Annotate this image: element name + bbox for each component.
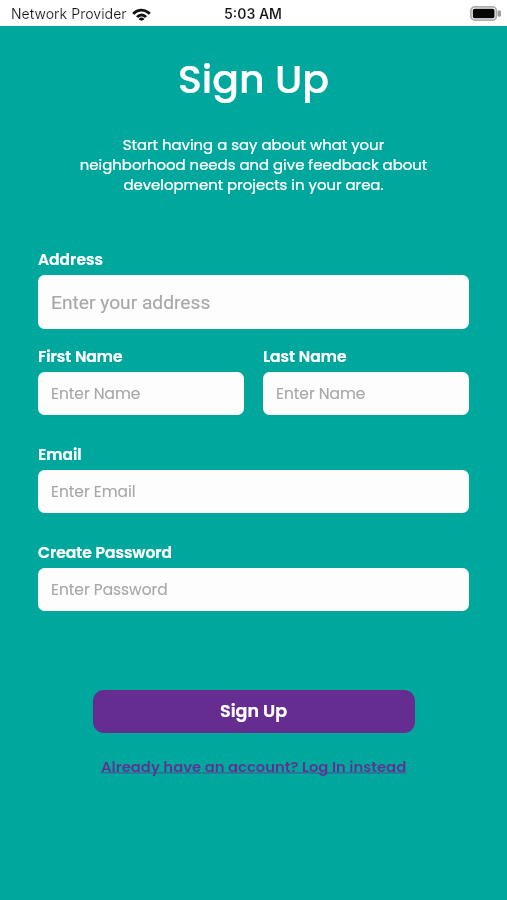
button[interactable]: Already have an account? Log In instead [101,756,407,777]
staticText: Create Password [38,542,173,564]
button[interactable]: Enter Email [38,470,469,513]
staticText: Address [38,249,103,271]
staticText: Sign Up [220,699,288,724]
staticText: Enter Password [51,579,168,601]
staticText: Enter Name [51,383,141,405]
staticText: First Name [38,346,123,368]
staticText: Email [38,444,82,466]
staticText: Sign Up [178,52,330,107]
staticText: Last Name [263,346,347,368]
staticText: Network Provider [11,5,127,22]
button[interactable]: Enter Password [38,568,469,611]
button[interactable]: Sign Up [93,690,415,733]
button[interactable]: Enter your address [38,275,469,329]
button[interactable]: Enter Name [38,372,244,415]
staticText: 5:03 AM [224,5,283,22]
button[interactable]: Enter Name [263,372,469,415]
staticText: Enter Name [276,383,366,405]
staticText: Start having a say about what your neigh… [38,134,469,195]
staticText: Already have an account? Log In instead [101,756,407,777]
staticText: Enter your address [51,291,211,314]
staticText: Enter Email [51,481,136,503]
